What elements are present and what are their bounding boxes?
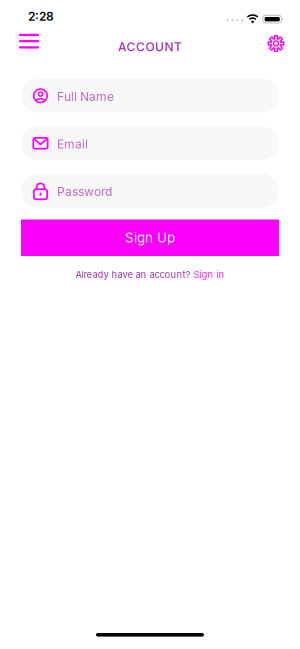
staticText: Sign Up (125, 230, 175, 246)
button[interactable]: Menu (0, 30, 39, 49)
button[interactable]: Sign in (193, 269, 224, 280)
staticText: ACCOUNT (118, 40, 182, 54)
textField[interactable]: Email (21, 126, 279, 160)
button[interactable]: Sign Up (21, 219, 279, 256)
staticText: Full Name (57, 90, 114, 104)
staticText: Already have an account? (75, 269, 190, 280)
staticText: 2:28 (28, 9, 54, 24)
textField[interactable]: Password (21, 174, 279, 207)
textField[interactable]: Full Name (21, 79, 279, 112)
staticText: Password (57, 185, 112, 199)
staticText: Email (57, 137, 88, 151)
button[interactable]: Settings (267, 35, 284, 52)
staticText: Sign in (193, 269, 224, 280)
